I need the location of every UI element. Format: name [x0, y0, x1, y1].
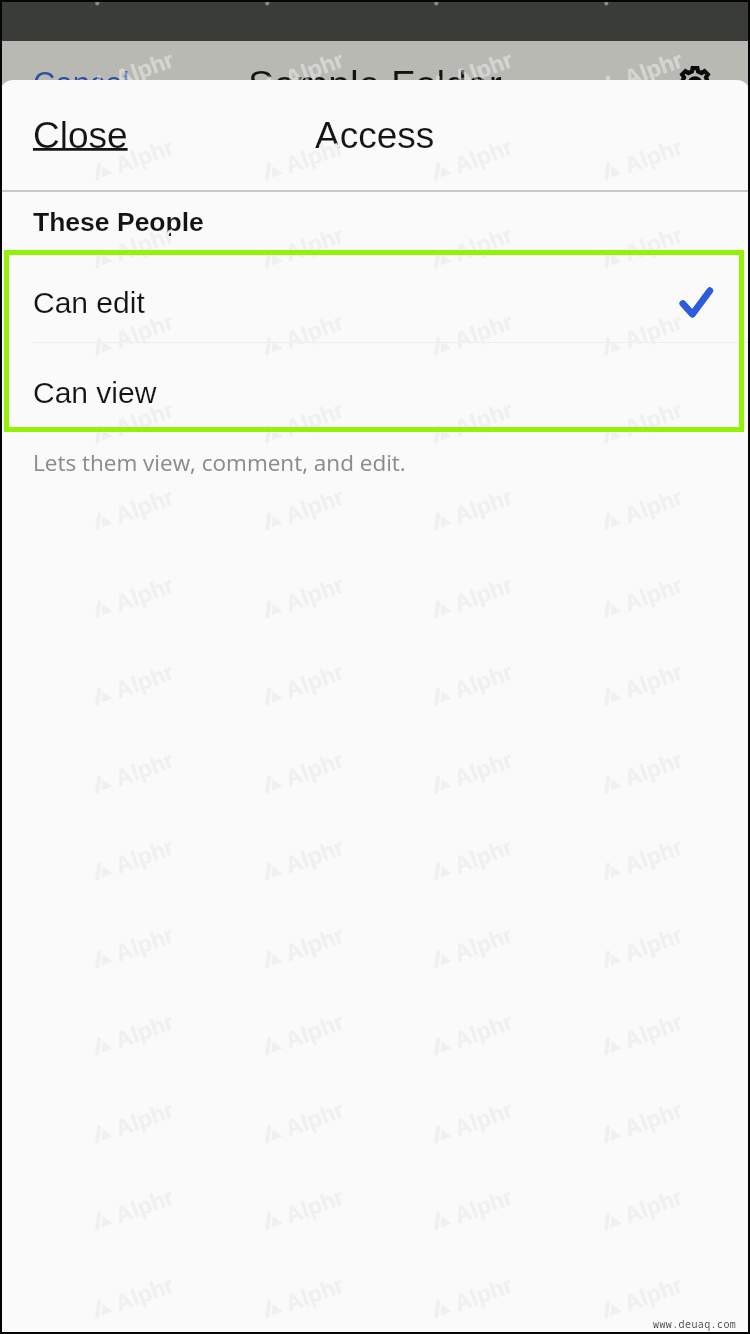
- staticText: Alphr: [282, 1271, 348, 1316]
- staticText: Alphr: [112, 0, 178, 3]
- staticText: Alphr: [282, 1096, 348, 1141]
- staticText: Alphr: [282, 483, 348, 528]
- staticText: Alphr: [112, 1008, 178, 1053]
- staticText: Alphr: [451, 308, 517, 353]
- staticText: Alphr: [112, 571, 178, 616]
- button[interactable]: Close: [33, 115, 128, 156]
- staticText: Alphr: [621, 308, 687, 353]
- staticText: Lets them view, comment, and edit.: [33, 447, 406, 478]
- staticText: Alphr: [451, 746, 517, 791]
- staticText: Alphr: [282, 746, 348, 791]
- staticText: Alphr: [451, 921, 517, 966]
- staticText: Alphr: [451, 1008, 517, 1053]
- staticText: Can view: [33, 376, 157, 410]
- staticText: Alphr: [451, 46, 517, 91]
- staticText: Alphr: [112, 396, 178, 441]
- staticText: Alphr: [282, 396, 348, 441]
- staticText: Alphr: [451, 396, 517, 441]
- staticText: Alphr: [451, 483, 517, 528]
- staticText: Alphr: [112, 746, 178, 791]
- staticText: Alphr: [282, 221, 348, 266]
- staticText: Alphr: [451, 221, 517, 266]
- staticText: Alphr: [621, 833, 687, 878]
- staticText: Alphr: [621, 746, 687, 791]
- staticText: Alphr: [451, 658, 517, 703]
- staticText: Alphr: [282, 0, 348, 3]
- staticText: Alphr: [112, 483, 178, 528]
- staticText: Alphr: [451, 1271, 517, 1316]
- staticText: Can edit: [33, 286, 145, 320]
- staticText: Alphr: [621, 1008, 687, 1053]
- staticText: Alphr: [621, 921, 687, 966]
- staticText: Alphr: [112, 221, 178, 266]
- staticText: Alphr: [112, 1183, 178, 1228]
- staticText: Alphr: [112, 308, 178, 353]
- staticText: Alphr: [621, 0, 687, 3]
- staticText: Alphr: [112, 921, 178, 966]
- staticText: Alphr: [112, 833, 178, 878]
- other: Settings: [679, 68, 711, 100]
- staticText: Alphr: [451, 1183, 517, 1228]
- staticText: Alphr: [282, 571, 348, 616]
- staticText: Alphr: [282, 658, 348, 703]
- button[interactable]: Can view: [0, 343, 750, 433]
- staticText: Alphr: [621, 571, 687, 616]
- staticText: Alphr: [621, 396, 687, 441]
- staticText: Alphr: [451, 0, 517, 3]
- staticText: Alphr: [621, 133, 687, 178]
- staticText: Alphr: [621, 1183, 687, 1228]
- staticText: These People: [33, 207, 204, 237]
- staticText: Alphr: [282, 308, 348, 353]
- staticText: Alphr: [282, 921, 348, 966]
- staticText: www.deuaq.com: [653, 1317, 737, 1331]
- staticText: Close: [33, 115, 128, 156]
- staticText: Alphr: [282, 1008, 348, 1053]
- staticText: Alphr: [621, 46, 687, 91]
- button[interactable]: Can edit: [0, 252, 750, 342]
- staticText: Alphr: [451, 571, 517, 616]
- staticText: Access: [315, 115, 435, 156]
- staticText: Alphr: [112, 1096, 178, 1141]
- staticText: Alphr: [282, 46, 348, 91]
- staticText: Cancel: [33, 66, 130, 101]
- staticText: Alphr: [112, 46, 178, 91]
- staticText: Alphr: [112, 658, 178, 703]
- staticText: Alphr: [112, 1271, 178, 1316]
- staticText: Alphr: [282, 133, 348, 178]
- staticText: Alphr: [621, 1096, 687, 1141]
- staticText: Alphr: [451, 133, 517, 178]
- staticText: Alphr: [112, 133, 178, 178]
- staticText: Alphr: [451, 1096, 517, 1141]
- staticText: Alphr: [451, 833, 517, 878]
- staticText: Sample Folder: [248, 63, 502, 107]
- staticText: Alphr: [282, 1183, 348, 1228]
- staticText: Alphr: [621, 1271, 687, 1316]
- staticText: Alphr: [282, 833, 348, 878]
- staticText: Alphr: [621, 221, 687, 266]
- staticText: Alphr: [621, 483, 687, 528]
- staticText: Alphr: [621, 658, 687, 703]
